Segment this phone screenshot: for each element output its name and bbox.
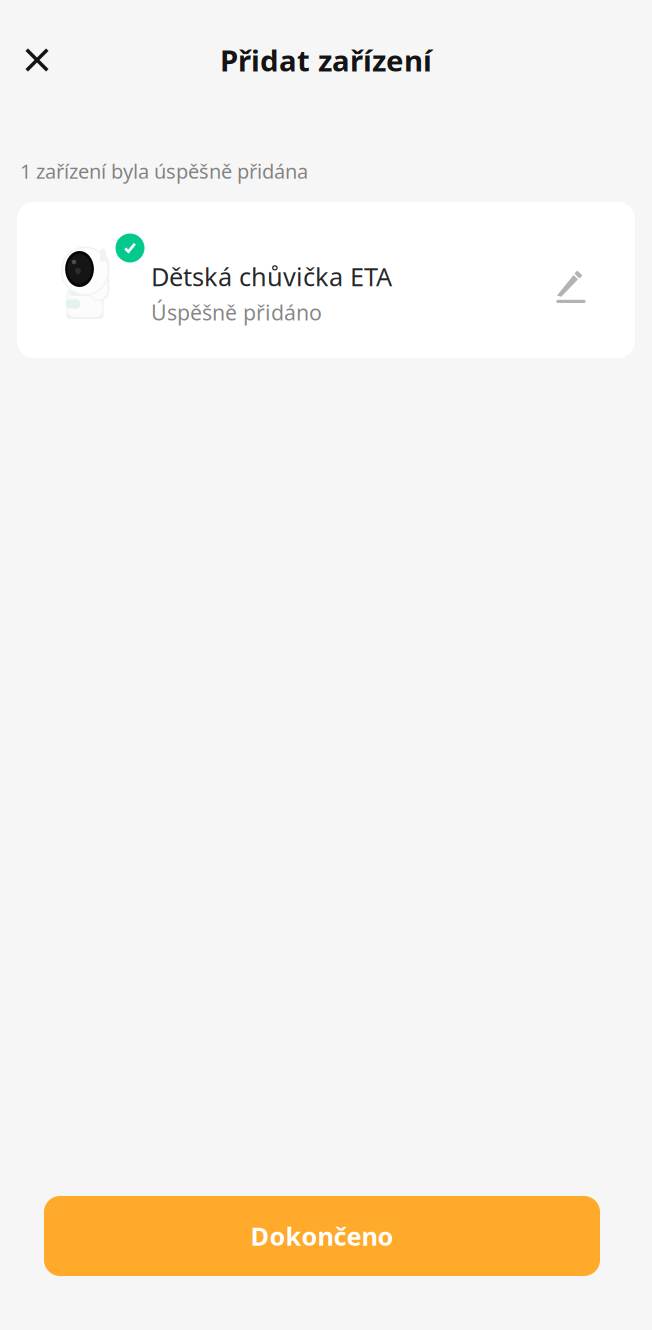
staticText: Přidat zařízení — [220, 40, 432, 79]
button[interactable]: Dětská chůvička ETA — [17, 202, 635, 358]
staticText: 1 zařízení byla úspěšně přidána — [20, 158, 308, 184]
staticText: Dokončeno — [250, 1219, 393, 1253]
staticText: Úspěšně přidáno — [151, 298, 322, 326]
button[interactable]: Dokončeno — [44, 1196, 600, 1276]
staticText: Dětská chůvička ETA — [151, 259, 392, 293]
button[interactable]: Close — [4, 29, 70, 91]
